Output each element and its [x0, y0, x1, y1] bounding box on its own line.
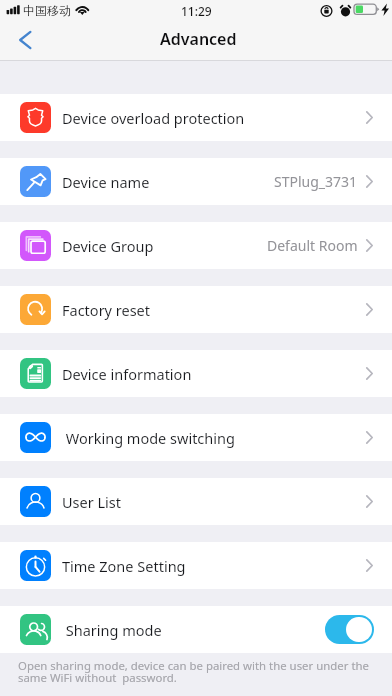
button[interactable]: Device Group — [0, 222, 392, 269]
staticText: Device name — [62, 172, 150, 192]
button[interactable]: Back — [0, 22, 46, 59]
button[interactable]: Device name — [0, 158, 392, 205]
staticText: Sharing mode — [62, 620, 162, 640]
button[interactable]: Device overload protection — [0, 94, 392, 141]
staticText: Open sharing mode, device can be paired … — [18, 658, 369, 685]
button[interactable]: Sharing mode — [0, 606, 392, 653]
button[interactable]: Factory reset — [0, 286, 392, 333]
staticText: Advanced — [160, 28, 237, 50]
staticText: Default Room — [267, 236, 358, 255]
staticText: Working mode switching — [62, 428, 235, 448]
button[interactable]: User List — [0, 478, 392, 525]
staticText: User List — [62, 492, 122, 512]
button[interactable]: Working mode switching — [0, 414, 392, 461]
staticText: Device overload protection — [62, 108, 245, 128]
button[interactable]: Time Zone Setting — [0, 542, 392, 589]
staticText: Device information — [62, 364, 192, 384]
staticText: Factory reset — [62, 300, 151, 320]
staticText: 11:29 — [181, 3, 212, 19]
button[interactable]: Device information — [0, 350, 392, 397]
staticText: 中国移动 — [23, 3, 71, 18]
staticText: STPlug_3731 — [274, 172, 358, 191]
button[interactable]: Sharing mode toggle — [325, 615, 374, 644]
staticText: Time Zone Setting — [62, 556, 186, 576]
staticText: Device Group — [62, 236, 154, 256]
